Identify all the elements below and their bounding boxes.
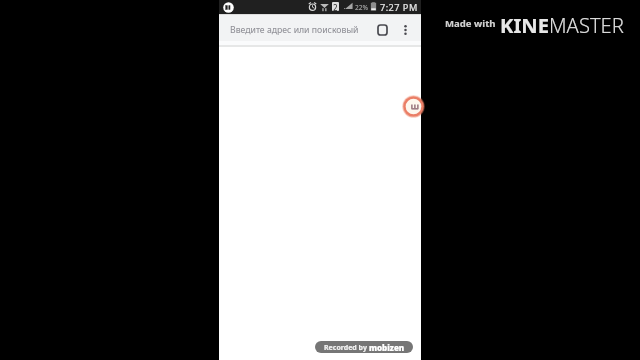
staticText: KINE — [500, 11, 549, 39]
staticText: Введите адрес или поисковый — [230, 24, 359, 36]
button[interactable]: More options — [396, 21, 414, 39]
staticText: 7:27 PM — [380, 1, 418, 14]
staticText: Made with — [445, 17, 496, 30]
staticText: 2 — [333, 2, 338, 11]
staticText: 22% — [355, 3, 369, 12]
staticText: mobizen — [369, 342, 405, 353]
staticText: Recorded by — [324, 343, 369, 353]
staticText: MASTER — [549, 11, 624, 39]
button[interactable]: Введите адрес или поисковый — [219, 15, 369, 45]
button[interactable]: Tabs — [373, 21, 391, 39]
